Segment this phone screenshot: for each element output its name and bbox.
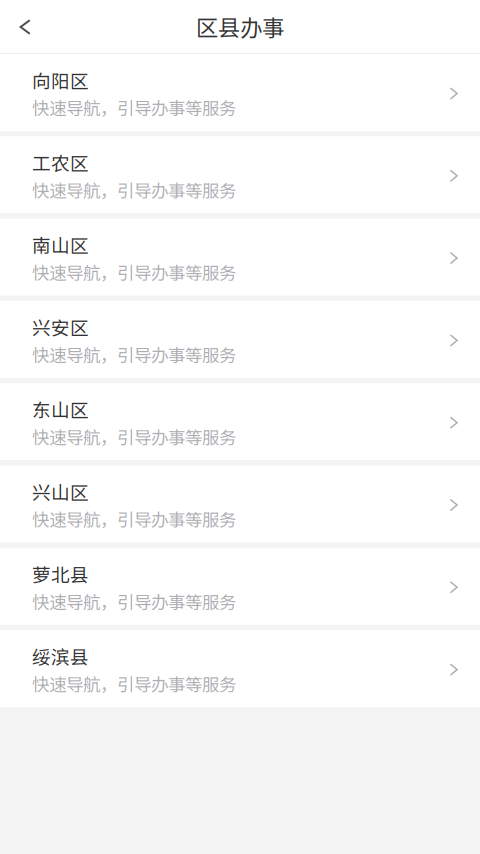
staticText: 快速导航，引导办事等服务 — [32, 342, 236, 367]
button[interactable]: 向阳区 — [0, 54, 480, 131]
staticText: 向阳区 — [32, 66, 89, 93]
staticText: 工农区 — [32, 149, 89, 176]
staticText: 兴安区 — [32, 313, 89, 340]
button[interactable]: 兴安区 — [0, 301, 480, 378]
button[interactable]: 南山区 — [0, 219, 480, 296]
staticText: 绥滨县 — [32, 643, 89, 670]
staticText: 快速导航，引导办事等服务 — [32, 424, 236, 449]
button[interactable]: 绥滨县 — [0, 630, 480, 707]
staticText: 兴山区 — [32, 478, 89, 505]
staticText: 南山区 — [32, 231, 89, 258]
staticText: 萝北县 — [32, 560, 89, 587]
button[interactable]: Back — [0, 0, 48, 53]
staticText: 区县办事 — [196, 10, 284, 43]
staticText: 快速导航，引导办事等服务 — [32, 177, 236, 202]
button[interactable]: 兴山区 — [0, 465, 480, 542]
staticText: 快速导航，引导办事等服务 — [32, 506, 236, 532]
staticText: 快速导航，引导办事等服务 — [32, 259, 236, 285]
button[interactable]: 萝北县 — [0, 548, 480, 625]
staticText: 快速导航，引导办事等服务 — [32, 95, 236, 120]
button[interactable]: 工农区 — [0, 136, 480, 213]
button[interactable]: 东山区 — [0, 383, 480, 460]
staticText: 快速导航，引导办事等服务 — [32, 589, 236, 614]
staticText: 快速导航，引导办事等服务 — [32, 671, 236, 696]
staticText: 东山区 — [32, 396, 89, 423]
